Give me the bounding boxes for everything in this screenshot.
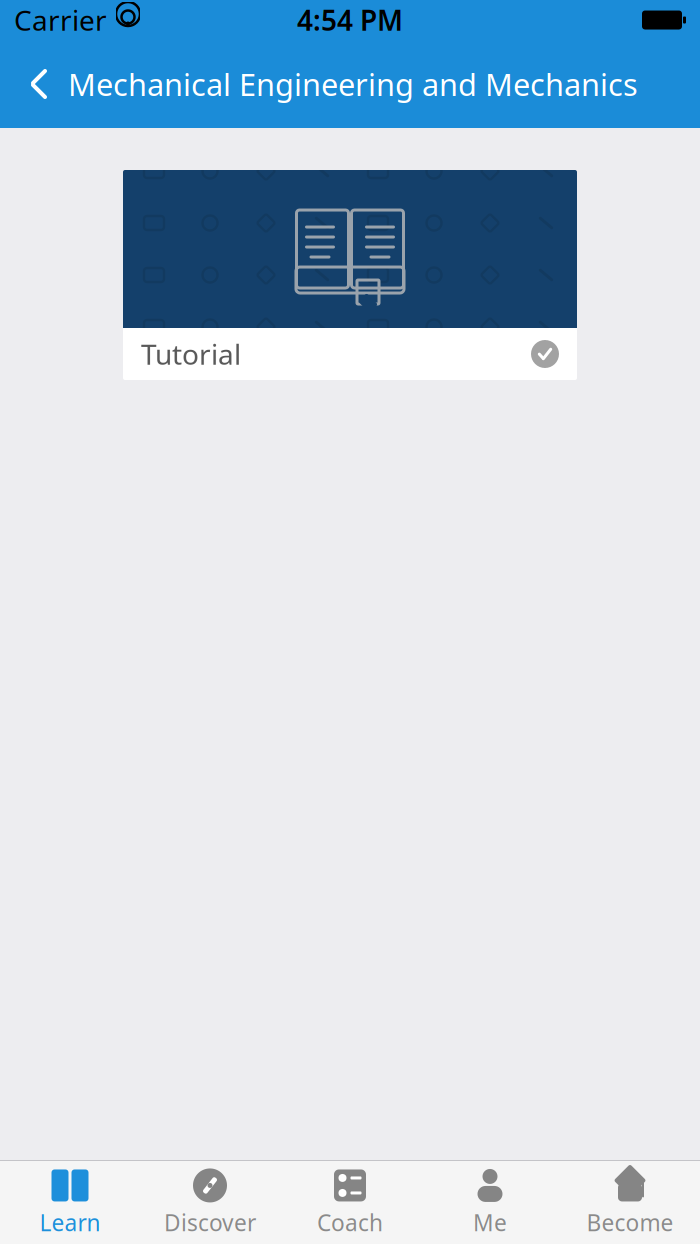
staticText: Tutorial: [141, 335, 241, 373]
button[interactable]: Back: [0, 55, 68, 113]
staticText: Carrier: [14, 1, 107, 39]
button[interactable]: Discover: [140, 1160, 280, 1244]
button[interactable]: Learn: [0, 1160, 140, 1244]
staticText: Discover: [164, 1207, 256, 1237]
staticText: Become: [586, 1207, 673, 1237]
staticText: Me: [473, 1207, 507, 1237]
button[interactable]: Tutorial: [123, 170, 577, 380]
button[interactable]: Become: [560, 1160, 700, 1244]
button[interactable]: Coach: [280, 1160, 420, 1244]
button[interactable]: Me: [420, 1160, 560, 1244]
staticText: 4:54 PM: [297, 1, 403, 39]
staticText: Learn: [39, 1207, 100, 1237]
staticText: Mechanical Engineering and Mechanics: [68, 64, 638, 104]
staticText: Coach: [317, 1207, 383, 1237]
